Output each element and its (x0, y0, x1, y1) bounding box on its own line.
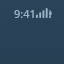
staticText: 9:41 (14, 6, 36, 21)
